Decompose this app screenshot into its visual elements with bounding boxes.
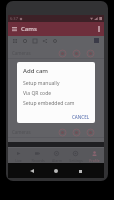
staticText: Profile [89, 158, 100, 163]
button[interactable]: Via QR code [17, 90, 95, 97]
button[interactable]: Back [25, 164, 39, 178]
button[interactable]: Camera [85, 127, 95, 137]
button[interactable]: Camera [57, 48, 67, 58]
button[interactable]: Profile [85, 148, 104, 163]
button[interactable]: Setup embedded cam [17, 100, 95, 107]
staticText: Alarm [52, 158, 62, 163]
staticText: Cameras [12, 50, 31, 56]
button[interactable]: Camera [71, 48, 81, 58]
button[interactable]: Camera [57, 127, 67, 137]
button[interactable]: Settings [66, 148, 85, 163]
button[interactable]: CANCEL [67, 111, 95, 123]
button[interactable]: More options [94, 24, 104, 34]
staticText: Add cam [23, 67, 48, 75]
staticText: Cams [21, 25, 37, 33]
staticText: 6:37 [10, 16, 18, 21]
button[interactable]: Tool 2 [31, 37, 38, 44]
button[interactable]: Home [49, 164, 63, 178]
button[interactable]: Tool 4 [51, 37, 58, 44]
button[interactable]: Records [28, 148, 47, 163]
staticText: Cameras [12, 129, 31, 135]
button[interactable]: Camera [85, 48, 95, 58]
button[interactable]: Menu [9, 24, 19, 34]
button[interactable]: Tool 3 [41, 37, 48, 44]
button[interactable]: Tool 1 [21, 37, 28, 44]
staticText: CANCEL [72, 114, 90, 120]
button[interactable]: Setup manually [17, 80, 95, 87]
button[interactable]: Recents [73, 164, 87, 178]
button[interactable]: Camera [71, 127, 81, 137]
button[interactable]: Tool 0 [11, 37, 18, 44]
